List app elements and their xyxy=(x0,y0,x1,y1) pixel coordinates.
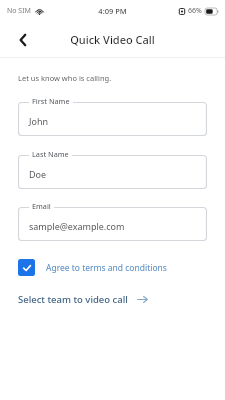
button[interactable]: John xyxy=(18,96,207,136)
staticText: Let us know who is calling. xyxy=(18,73,112,83)
staticText: Select team to video call xyxy=(18,293,128,306)
staticText: Quick Video Call xyxy=(70,32,155,47)
staticText: No SIM xyxy=(7,6,31,16)
staticText: 4:09 PM xyxy=(98,6,127,16)
staticText: First Name xyxy=(32,96,70,106)
staticText: Doe xyxy=(29,168,47,180)
button[interactable]: Select team to video call xyxy=(18,293,207,306)
staticText: 66% xyxy=(188,6,202,16)
button[interactable]: Doe xyxy=(18,149,207,189)
staticText: Last Name xyxy=(32,149,69,159)
staticText: sample@example.com xyxy=(29,220,125,232)
staticText: Email xyxy=(32,201,51,211)
staticText: Agree to terms and conditions xyxy=(46,262,167,274)
button[interactable]: Back xyxy=(10,27,36,53)
button[interactable]: Agree to terms and conditions xyxy=(18,259,207,276)
button[interactable]: sample@example.com xyxy=(18,201,207,241)
staticText: John xyxy=(29,115,49,127)
